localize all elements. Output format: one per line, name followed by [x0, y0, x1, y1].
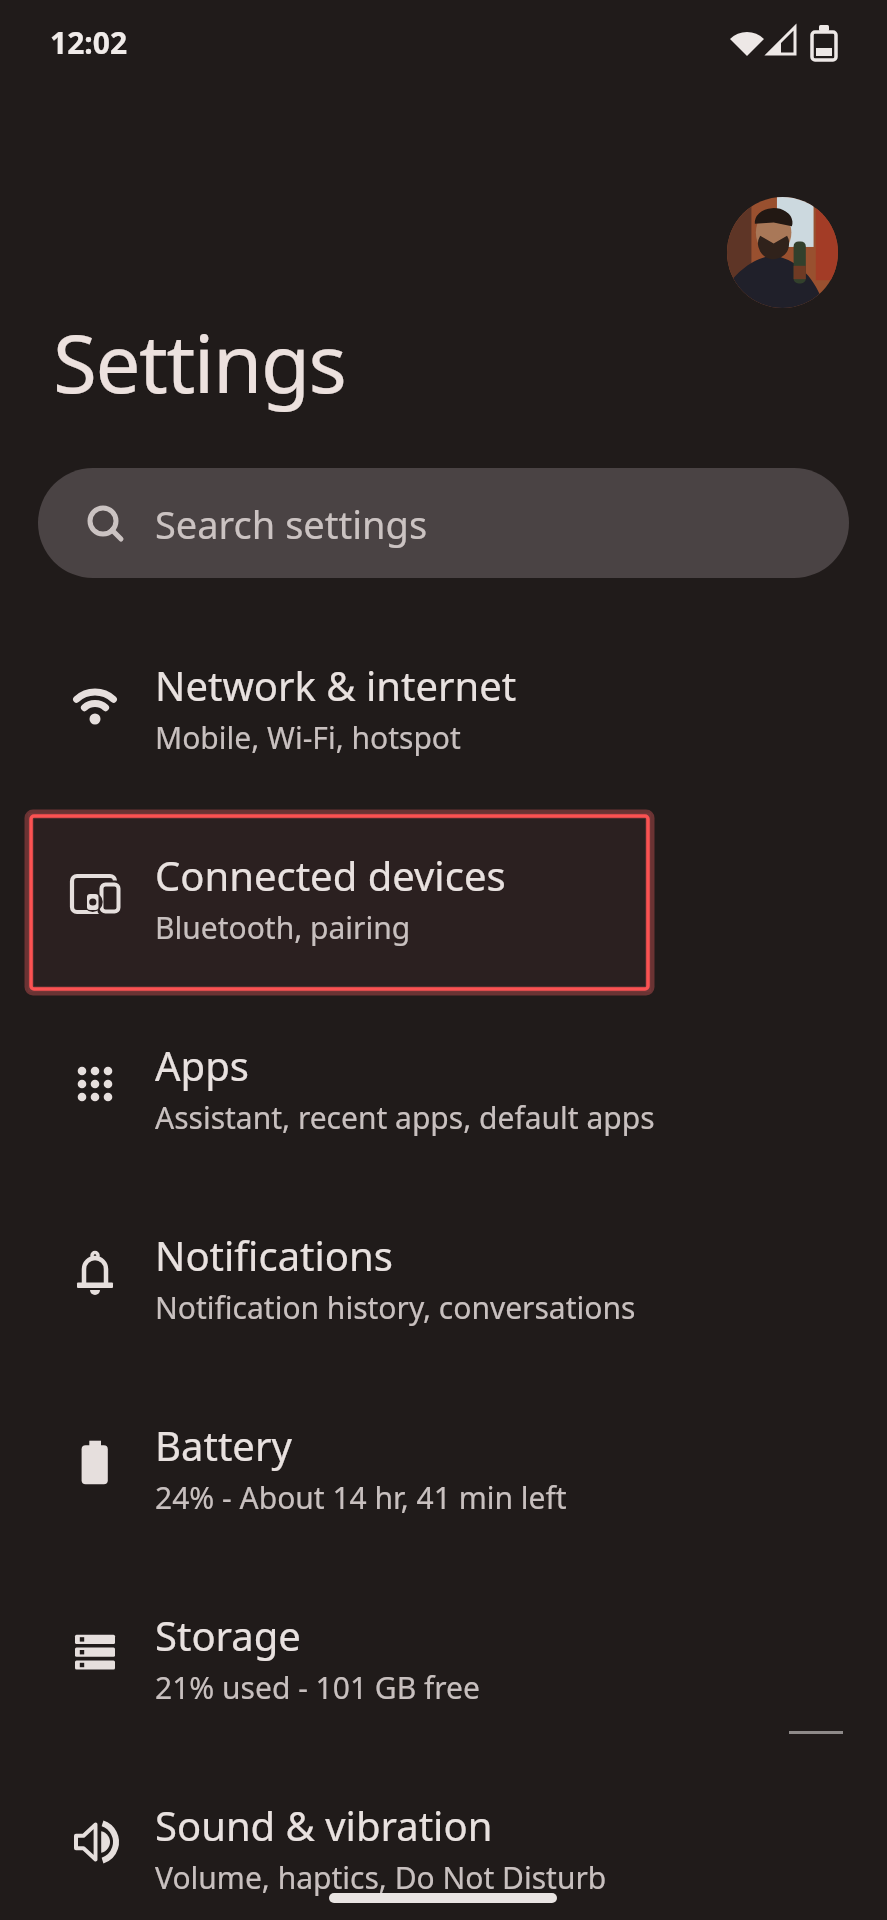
- staticText: 12:02: [50, 22, 128, 63]
- button[interactable]: Storage: [0, 1593, 887, 1723]
- button[interactable]: Search settings: [38, 468, 849, 578]
- staticText: 24% - About 14 hr, 41 min left: [155, 1477, 567, 1518]
- staticText: Battery: [155, 1418, 292, 1472]
- button[interactable]: Notifications: [0, 1213, 887, 1343]
- staticText: Volume, haptics, Do Not Disturb: [155, 1857, 607, 1898]
- staticText: Bluetooth, pairing: [155, 907, 411, 948]
- button[interactable]: Connected devices: [0, 833, 887, 963]
- staticText: Mobile, Wi-Fi, hotspot: [155, 717, 461, 758]
- staticText: Network & internet: [155, 658, 517, 712]
- staticText: Notifications: [155, 1228, 393, 1282]
- staticText: Settings: [53, 307, 346, 416]
- staticText: Search settings: [155, 498, 428, 550]
- staticText: Sound & vibration: [155, 1798, 493, 1852]
- staticText: 21% used - 101 GB free: [155, 1667, 480, 1708]
- staticText: Connected devices: [155, 848, 506, 902]
- staticText: Assistant, recent apps, default apps: [155, 1097, 655, 1138]
- button[interactable]: Network & internet: [0, 643, 887, 773]
- staticText: Apps: [155, 1038, 249, 1092]
- staticText: Notification history, conversations: [155, 1287, 636, 1328]
- staticText: Storage: [155, 1608, 301, 1662]
- button[interactable]: Sound & vibration: [0, 1783, 887, 1913]
- button[interactable]: Battery: [0, 1403, 887, 1533]
- button[interactable]: [727, 197, 838, 308]
- button[interactable]: Apps: [0, 1023, 887, 1153]
